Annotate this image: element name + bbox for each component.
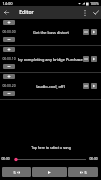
staticText: 00:00.10: [2, 56, 16, 60]
button[interactable]: Tap here to select a song: [0, 142, 101, 153]
staticText: Tap here to select a song: [31, 145, 71, 150]
staticText: 100%: [90, 1, 99, 6]
button[interactable]: Expand: [0, 19, 101, 45]
staticText: Get the bass distort: [33, 30, 69, 35]
staticText: 00:00.00: [2, 29, 16, 33]
staticText: (audio-cool, off): [36, 84, 65, 89]
button[interactable]: Forward 5 seconds: [68, 167, 98, 177]
staticText: 00:00: [89, 157, 98, 161]
button[interactable]: Expand: [0, 73, 101, 99]
staticText: 00:00.20: [2, 83, 16, 87]
button[interactable]: Done: [90, 6, 101, 19]
button[interactable]: Move clip: [83, 83, 89, 89]
button[interactable]: Play: [32, 167, 67, 177]
button[interactable]: Move clip: [83, 29, 89, 35]
button[interactable]: Expand: [0, 46, 101, 72]
staticText: Editor: [19, 9, 34, 16]
button[interactable]: Play clip: [91, 29, 97, 35]
button[interactable]: Expand: [3, 47, 15, 52]
staticText: by completing any bridge Purchase: [18, 57, 83, 62]
button[interactable]: Collapse: [3, 91, 15, 96]
button[interactable]: Collapse: [3, 37, 15, 42]
button[interactable]: Expand: [3, 74, 15, 79]
button[interactable]: Play clip: [91, 56, 97, 62]
staticText: 5: [13, 170, 16, 175]
button[interactable]: Back: [0, 6, 13, 19]
button[interactable]: Play clip: [91, 83, 97, 89]
button[interactable]: Expand: [3, 20, 15, 25]
button[interactable]: Move clip: [83, 56, 89, 62]
staticText: 00:00: [1, 157, 10, 161]
staticText: 5: [84, 170, 87, 175]
button[interactable]: Collapse: [3, 64, 15, 69]
button[interactable]: Rewind 5 seconds: [2, 167, 31, 177]
button[interactable]: More options: [79, 6, 90, 19]
staticText: 14:00: [2, 1, 13, 6]
